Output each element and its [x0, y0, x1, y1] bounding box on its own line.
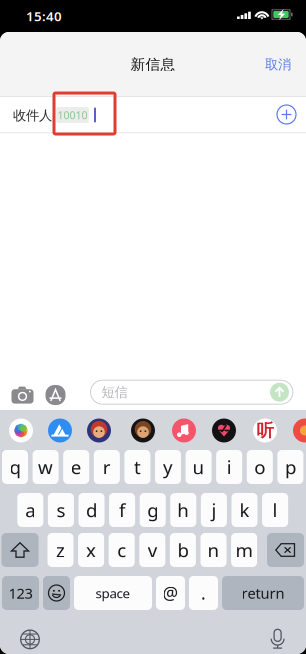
staticText: j: [211, 498, 216, 522]
staticText: 新信息: [130, 55, 175, 73]
staticText: p: [285, 455, 296, 479]
button[interactable]: t: [124, 450, 150, 484]
staticText: s: [56, 498, 65, 522]
staticText: m: [236, 538, 253, 562]
button[interactable]: d: [78, 493, 104, 527]
button[interactable]: z: [47, 533, 73, 567]
button[interactable]: x: [78, 533, 104, 567]
staticText: x: [86, 538, 96, 562]
button[interactable]: s: [48, 493, 74, 527]
staticText: 收件人:: [13, 106, 56, 124]
button[interactable]: Listen: [253, 418, 277, 442]
staticText: @: [162, 581, 178, 604]
button[interactable]: k: [231, 493, 257, 527]
staticText: l: [273, 498, 278, 522]
button[interactable]: n: [200, 533, 226, 567]
button[interactable]: i: [216, 450, 242, 484]
button[interactable]: Next keyboard: [20, 629, 40, 649]
button[interactable]: @: [156, 576, 185, 610]
button[interactable]: .: [189, 576, 218, 610]
staticText: t: [134, 455, 141, 479]
staticText: 取消: [265, 56, 291, 73]
staticText: z: [56, 538, 65, 562]
staticText: return: [241, 583, 284, 603]
staticText: c: [117, 538, 126, 562]
button[interactable]: c: [109, 533, 135, 567]
staticText: n: [207, 538, 219, 562]
staticText: v: [148, 538, 157, 562]
button[interactable]: m: [231, 533, 257, 567]
staticText: g: [147, 498, 158, 522]
staticText: u: [193, 455, 205, 479]
button[interactable]: u: [186, 450, 212, 484]
staticText: w: [38, 455, 53, 479]
button[interactable]: return: [222, 576, 304, 610]
staticText: r: [103, 455, 111, 479]
staticText: o: [254, 455, 265, 479]
staticText: 短信: [102, 384, 128, 400]
button[interactable]: w: [33, 450, 59, 484]
button[interactable]: App Store: [48, 418, 72, 442]
button[interactable]: space: [74, 576, 152, 610]
button[interactable]: l: [262, 493, 288, 527]
button[interactable]: v: [139, 533, 165, 567]
button[interactable]: iMessage apps: [45, 385, 65, 405]
staticText: h: [177, 498, 189, 522]
button[interactable]: More apps: [293, 418, 306, 442]
button[interactable]: Digital Touch: [212, 418, 236, 442]
button[interactable]: p: [277, 450, 303, 484]
staticText: 15:40: [26, 7, 62, 25]
staticText: q: [9, 455, 20, 479]
button[interactable]: h: [170, 493, 196, 527]
staticText: y: [163, 455, 173, 479]
button[interactable]: Camera: [11, 386, 33, 404]
button[interactable]: 123: [2, 576, 39, 610]
staticText: a: [25, 498, 35, 522]
staticText: i: [227, 455, 232, 479]
button[interactable]: j: [201, 493, 227, 527]
button[interactable]: e: [63, 450, 89, 484]
staticText: 123: [8, 583, 32, 603]
staticText: k: [239, 498, 249, 522]
staticText: f: [119, 498, 125, 522]
button[interactable]: o: [247, 450, 273, 484]
button[interactable]: Delete: [267, 533, 304, 567]
button[interactable]: Dictation: [270, 628, 285, 649]
button[interactable]: Shift: [1, 533, 38, 567]
staticText: 听: [256, 420, 273, 441]
staticText: space: [95, 584, 130, 602]
staticText: d: [86, 498, 97, 522]
button[interactable]: Music: [172, 418, 196, 442]
button[interactable]: Photos: [9, 418, 33, 442]
staticText: e: [71, 455, 82, 479]
button[interactable]: y: [155, 450, 181, 484]
button[interactable]: Memoji: [87, 418, 111, 442]
button[interactable]: a: [17, 493, 43, 527]
button[interactable]: 取消: [255, 47, 301, 82]
button[interactable]: r: [94, 450, 120, 484]
staticText: .: [201, 581, 206, 604]
button[interactable]: Memoji: [131, 418, 155, 442]
button[interactable]: g: [140, 493, 166, 527]
button[interactable]: q: [2, 450, 28, 484]
button[interactable]: Emoji: [43, 576, 70, 610]
button[interactable]: b: [170, 533, 196, 567]
staticText: 10010: [57, 108, 87, 122]
button[interactable]: Add contact: [277, 105, 296, 124]
staticText: b: [177, 538, 188, 562]
button[interactable]: f: [109, 493, 135, 527]
